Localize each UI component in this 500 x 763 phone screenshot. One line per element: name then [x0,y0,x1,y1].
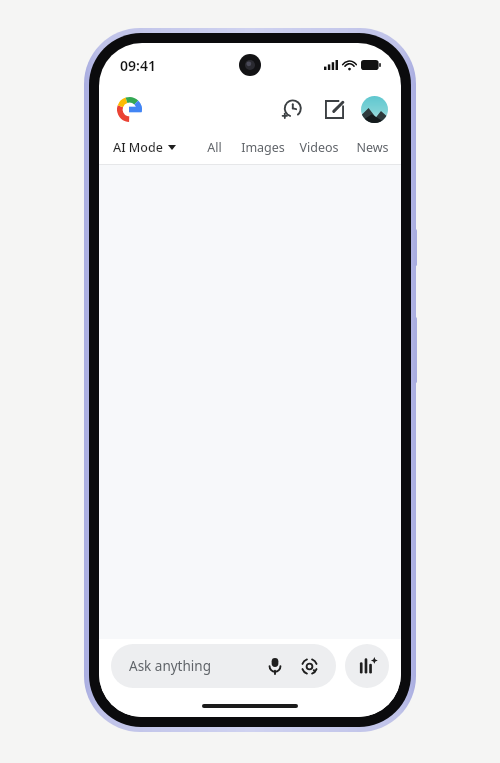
staticText: AI Mode [113,139,163,156]
button[interactable]: Videos [291,131,347,164]
other: Volume up [414,229,417,266]
button[interactable]: Live AI [345,644,389,688]
button[interactable]: Google [109,89,149,129]
staticText: News [356,139,389,156]
button[interactable]: All [194,131,235,164]
button[interactable]: News [347,131,397,164]
button[interactable]: Ask anything [111,644,336,688]
staticText: All [207,139,222,156]
button[interactable]: Compose [315,90,353,128]
button[interactable]: History [273,90,311,128]
button[interactable]: AI Mode [109,136,180,159]
staticText: Videos [299,139,339,156]
button[interactable]: Voice search [260,651,290,681]
staticText: 09:41 [120,56,156,75]
other: Power [414,317,417,383]
staticText: Ask anything [129,657,260,675]
button[interactable]: Images [235,131,291,164]
button[interactable]: Account [355,90,393,128]
staticText: Images [241,139,285,156]
button[interactable]: Google Lens [294,651,324,681]
